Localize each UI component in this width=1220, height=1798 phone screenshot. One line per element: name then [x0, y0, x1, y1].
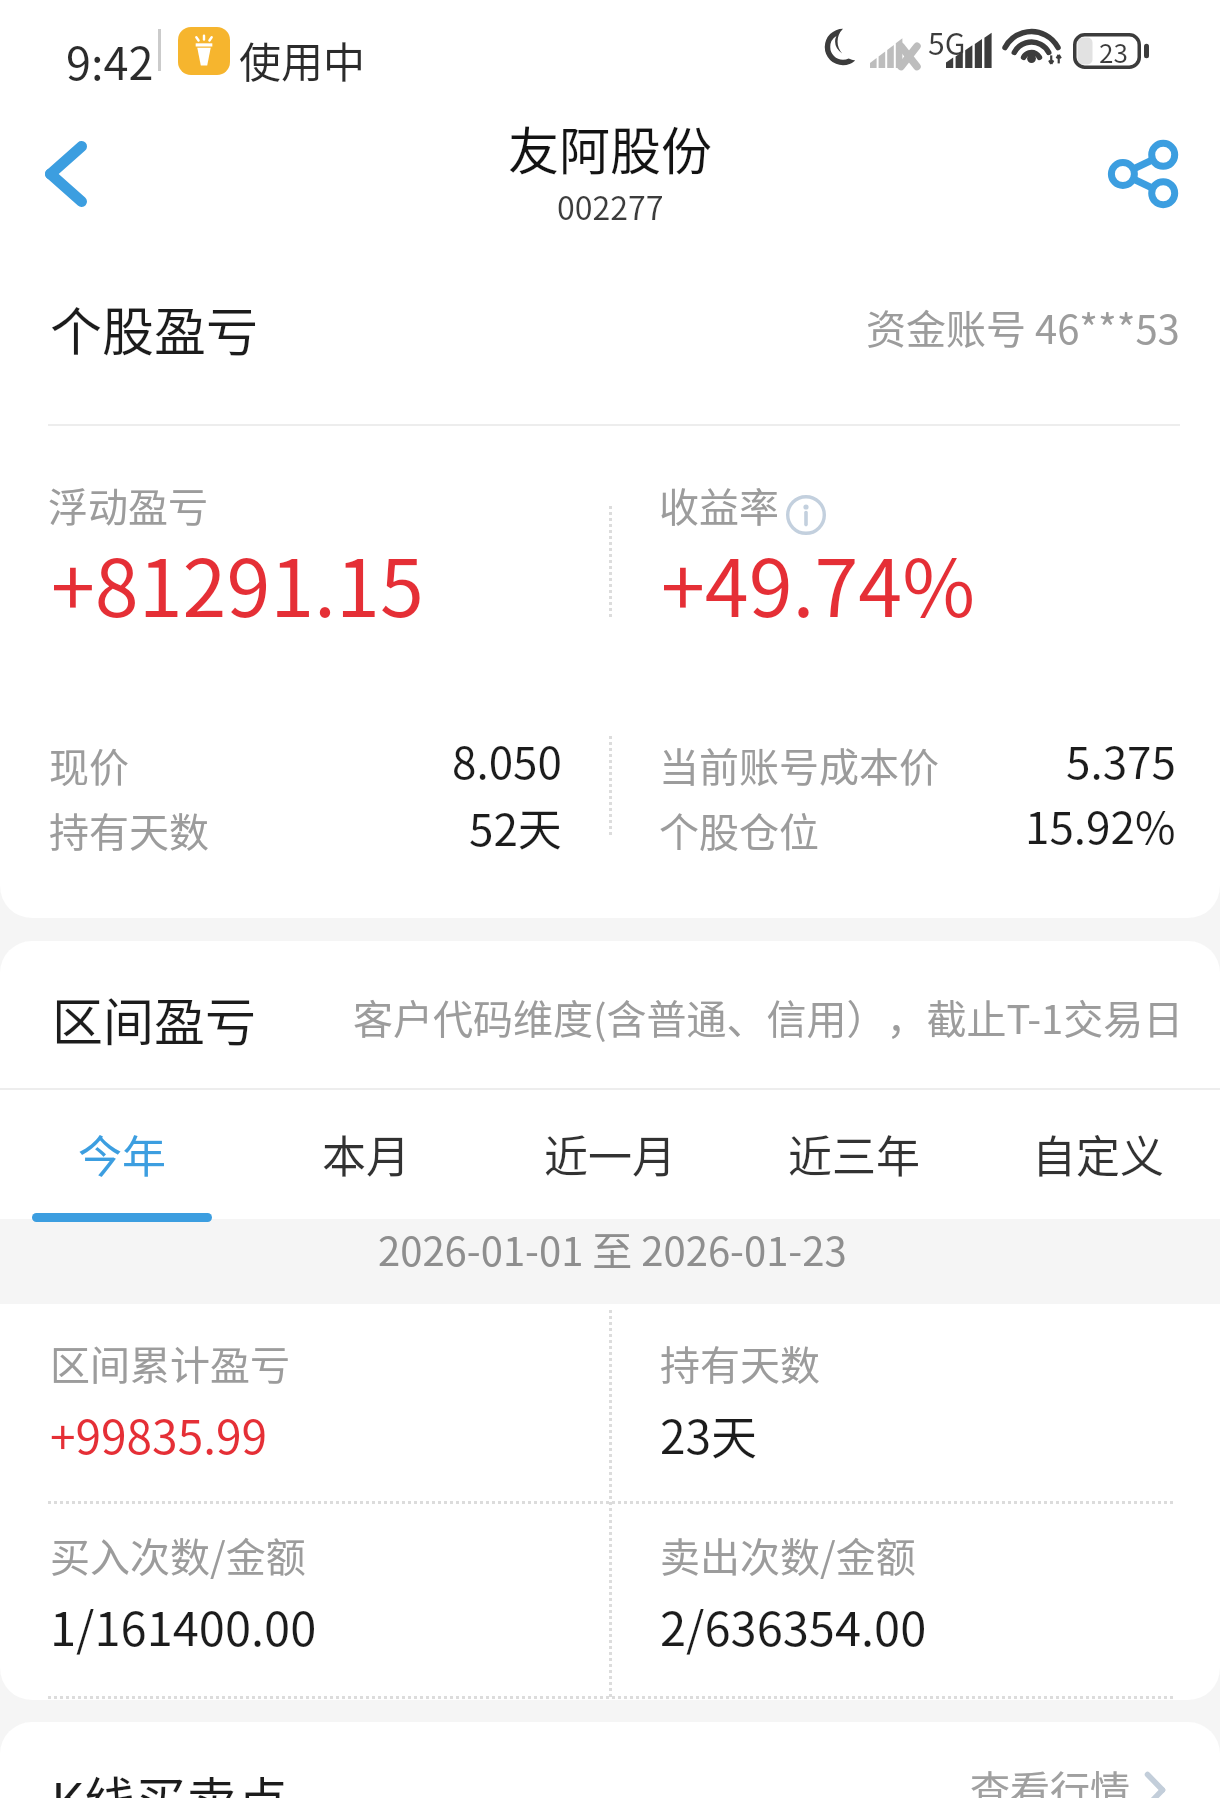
staticText: K线买卖点	[51, 1761, 288, 1798]
button[interactable]: 本月	[244, 1088, 488, 1228]
staticText: 23	[1099, 33, 1128, 69]
button[interactable]: 近一月	[488, 1088, 732, 1228]
staticText: 持有天数	[49, 801, 209, 859]
staticText: 9:42	[66, 28, 154, 93]
staticText: 近三年	[788, 1122, 920, 1186]
staticText: 区间盈亏	[52, 982, 257, 1056]
staticText: 本月	[322, 1122, 410, 1186]
staticText: 个股仓位	[659, 801, 819, 859]
staticText: 5G	[928, 20, 966, 63]
staticText: 8.050	[452, 728, 562, 792]
button[interactable]: Share	[1094, 124, 1194, 224]
button[interactable]: Back	[16, 124, 116, 224]
staticText: 持有天数	[660, 1334, 820, 1392]
staticText: 52天	[469, 795, 562, 859]
staticText: 5.375	[1066, 728, 1176, 792]
staticText: +81291.15	[51, 525, 424, 639]
staticText: 近一月	[544, 1122, 676, 1186]
staticText: 今年	[78, 1122, 166, 1186]
staticText: 15.92%	[1025, 793, 1176, 857]
staticText: +49.74%	[661, 525, 975, 639]
staticText: +99835.99	[50, 1401, 268, 1468]
staticText: 区间累计盈亏	[50, 1334, 290, 1392]
staticText: 当前账号成本价	[659, 736, 939, 794]
staticText: 收益率	[659, 476, 779, 534]
button[interactable]: 查看行情	[960, 1758, 1176, 1798]
staticText: 卖出次数/金额	[660, 1526, 916, 1584]
button[interactable]: 2026-01-01 至 2026-01-23	[0, 1219, 1220, 1304]
button[interactable]: 自定义	[976, 1088, 1220, 1228]
staticText: 现价	[49, 736, 129, 794]
staticText: 客户代码维度(含普通、信用），截止T-1交易日	[353, 988, 1184, 1046]
button[interactable]: 近三年	[732, 1088, 976, 1228]
staticText: 2026-01-01 至 2026-01-23	[378, 1220, 847, 1278]
staticText: 买入次数/金额	[50, 1526, 306, 1584]
staticText: 个股盈亏	[50, 291, 259, 366]
button[interactable]: About return rate	[786, 495, 826, 535]
staticText: 使用中	[239, 29, 366, 90]
staticText: 23天	[660, 1401, 758, 1468]
staticText: 002277	[557, 183, 664, 229]
staticText: 1/161400.00	[50, 1591, 317, 1659]
staticText: 2/636354.00	[660, 1591, 927, 1659]
staticText: 资金账号 46***53	[866, 298, 1180, 356]
staticText: 友阿股份	[508, 111, 713, 185]
staticText: 浮动盈亏	[48, 476, 208, 534]
staticText: 自定义	[1032, 1122, 1164, 1186]
staticText: 查看行情	[970, 1759, 1130, 1798]
button[interactable]: 今年	[0, 1088, 244, 1228]
